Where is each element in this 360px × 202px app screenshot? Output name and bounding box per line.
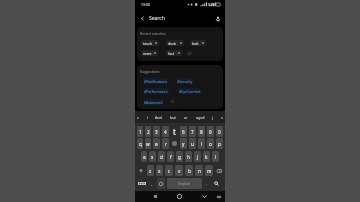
- staticText: batt: [192, 41, 199, 46]
- button[interactable]: c: [165, 165, 173, 176]
- button[interactable]: #Performance: [143, 88, 169, 94]
- staticText: w: [146, 141, 150, 147]
- button[interactable]: f: [167, 151, 174, 162]
- button[interactable]: #EyeComfort: [178, 88, 201, 94]
- button[interactable]: 2: [145, 126, 151, 137]
- staticText: #Performance: [144, 89, 168, 94]
- staticText: devic: [168, 41, 177, 46]
- button[interactable]: i: [198, 138, 205, 149]
- staticText: h: [187, 154, 190, 160]
- staticText: .: [206, 181, 208, 187]
- button[interactable]: Shift: [135, 165, 146, 176]
- staticText: a: [143, 154, 146, 160]
- button[interactable]: #Advanced: [143, 99, 164, 105]
- button[interactable]: t: [171, 126, 178, 137]
- button[interactable]: Symbols: [136, 178, 147, 189]
- staticText: #Notifications: [144, 79, 168, 84]
- button[interactable]: g: [176, 151, 183, 162]
- button[interactable]: Comma: [148, 178, 156, 189]
- button[interactable]: Emoji: [157, 178, 165, 189]
- staticText: r: [165, 141, 167, 147]
- button[interactable]: more: [141, 50, 158, 56]
- button[interactable]: Backspace: [214, 165, 225, 176]
- button[interactable]: English: [167, 178, 202, 189]
- staticText: t: [173, 126, 176, 137]
- button[interactable]: batt: [190, 40, 206, 46]
- button[interactable]: devic: [166, 40, 184, 46]
- button[interactable]: 7: [189, 126, 196, 137]
- button[interactable]: aged: [196, 115, 205, 120]
- button[interactable]: Recents: [150, 191, 161, 202]
- staticText: e: [155, 141, 158, 147]
- staticText: 1: [139, 129, 142, 135]
- button[interactable]: x: [156, 165, 163, 176]
- button[interactable]: w: [145, 138, 151, 149]
- button[interactable]: i: [147, 115, 148, 120]
- button[interactable]: 0: [216, 126, 223, 137]
- button[interactable]: Home: [174, 191, 185, 202]
- button[interactable]: Voice search: [211, 12, 224, 25]
- button[interactable]: k: [203, 151, 210, 162]
- button[interactable]: p: [216, 138, 223, 149]
- button[interactable]: b: [185, 165, 193, 176]
- button[interactable]: 1: [137, 126, 143, 137]
- button[interactable]: o: [207, 138, 214, 149]
- button[interactable]: m: [205, 165, 213, 176]
- staticText: u: [191, 141, 194, 147]
- button[interactable]: [171, 138, 178, 149]
- staticText: 3: [155, 129, 158, 135]
- staticText: c: [168, 168, 171, 174]
- button[interactable]: #Notifications: [143, 78, 168, 84]
- button[interactable]: And: [155, 115, 162, 120]
- staticText: 7: [191, 129, 194, 135]
- staticText: 2: [147, 129, 150, 135]
- staticText: l: [215, 154, 217, 160]
- button[interactable]: but: [170, 115, 176, 120]
- button[interactable]: c: [137, 115, 139, 120]
- staticText: touch: [143, 41, 153, 46]
- button[interactable]: fast: [166, 50, 182, 56]
- button[interactable]: #Security: [177, 78, 193, 84]
- button[interactable]: u: [189, 138, 196, 149]
- button[interactable]: 3: [153, 126, 160, 137]
- button[interactable]: touch: [141, 40, 159, 46]
- staticText: #Advanced: [144, 100, 163, 105]
- staticText: i: [201, 141, 203, 147]
- button[interactable]: e: [153, 138, 160, 149]
- button[interactable]: 8: [198, 126, 205, 137]
- button[interactable]: j: [212, 115, 213, 120]
- button[interactable]: ar: [184, 115, 188, 120]
- button[interactable]: a: [141, 151, 147, 162]
- button[interactable]: y: [180, 138, 187, 149]
- button[interactable]: r: [162, 138, 169, 149]
- button[interactable]: v: [175, 165, 183, 176]
- button[interactable]: z: [147, 165, 154, 176]
- button[interactable]: Back: [136, 12, 149, 25]
- staticText: 8: [200, 129, 203, 135]
- button[interactable]: 9: [207, 126, 214, 137]
- button[interactable]: l: [212, 151, 219, 162]
- button[interactable]: d: [158, 151, 165, 162]
- button[interactable]: Hide keyboard: [213, 191, 224, 202]
- button[interactable]: s: [149, 151, 156, 162]
- button[interactable]: j: [194, 151, 201, 162]
- button[interactable]: Period: [203, 178, 211, 189]
- staticText: Recent searches: [140, 31, 166, 36]
- staticText: q: [139, 141, 142, 147]
- button[interactable]: 6: [180, 126, 187, 137]
- staticText: s: [151, 154, 154, 160]
- staticText: z: [149, 168, 152, 174]
- button[interactable]: 4: [162, 126, 169, 137]
- staticText: 0: [218, 129, 221, 135]
- button[interactable]: More recent searches: [187, 51, 192, 56]
- button[interactable]: Search: [211, 178, 222, 189]
- button[interactable]: n: [195, 165, 203, 176]
- staticText: g: [178, 154, 181, 160]
- button[interactable]: q: [137, 138, 143, 149]
- button[interactable]: h: [185, 151, 192, 162]
- button[interactable]: Back: [199, 191, 210, 202]
- button[interactable]: s: [221, 115, 223, 120]
- staticText: 9: [209, 129, 212, 135]
- staticText: ,: [151, 181, 153, 187]
- button[interactable]: More suggestions: [170, 99, 175, 104]
